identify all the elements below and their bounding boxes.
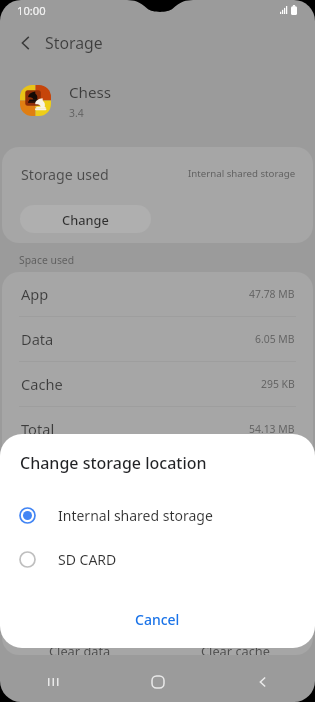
staticText: App <box>21 284 49 304</box>
button[interactable]: Back <box>0 23 315 63</box>
staticText: Total <box>21 419 55 439</box>
button[interactable]: Change <box>20 205 151 233</box>
staticText: Change <box>62 211 109 228</box>
staticText: Cached data <box>21 464 107 484</box>
staticText: SD CARD <box>58 550 117 569</box>
button[interactable]: Clear cache <box>157 613 313 655</box>
staticText: Space used <box>19 253 75 267</box>
button[interactable]: Internal shared storage <box>0 493 315 537</box>
staticText: Cancel <box>135 610 180 629</box>
button[interactable]: Clear data <box>2 613 157 655</box>
button[interactable]: Wi-Fi <box>2 542 313 586</box>
staticText: Storage <box>45 32 103 54</box>
staticText: Wi-Fi <box>21 554 55 574</box>
button[interactable]: Back <box>15 32 37 54</box>
staticText: Clear data <box>49 642 111 655</box>
staticText: 54.13 MB <box>249 422 295 436</box>
staticText: Data <box>21 329 54 349</box>
staticText: Change storage location <box>20 452 207 474</box>
button[interactable]: Data <box>2 317 313 361</box>
button[interactable]: Back <box>210 662 315 702</box>
button[interactable]: Total <box>2 407 313 451</box>
button[interactable]: Mobile data <box>2 497 313 541</box>
staticText: 295 KB <box>261 377 295 391</box>
button[interactable]: Home <box>105 662 210 702</box>
staticText: Internal shared storage <box>58 506 213 525</box>
staticText: 3.4 <box>69 106 84 118</box>
button[interactable]: Recent apps <box>0 662 105 702</box>
button[interactable]: App <box>2 272 313 316</box>
button[interactable]: Cancel <box>121 604 194 635</box>
staticText: Cache <box>21 374 63 394</box>
staticText: Storage used <box>21 165 109 184</box>
staticText: 10:00 <box>17 3 46 18</box>
staticText: 6.05 MB <box>255 332 295 346</box>
button[interactable]: SD CARD <box>0 537 315 581</box>
button[interactable]: Cache <box>2 362 313 406</box>
staticText: Chess <box>69 82 112 103</box>
staticText: 47.78 MB <box>249 287 295 301</box>
staticText: Internal shared storage <box>188 167 296 180</box>
staticText: Clear cache <box>201 642 270 655</box>
button[interactable]: Cached data <box>2 452 313 496</box>
staticText: Mobile data <box>21 509 103 529</box>
